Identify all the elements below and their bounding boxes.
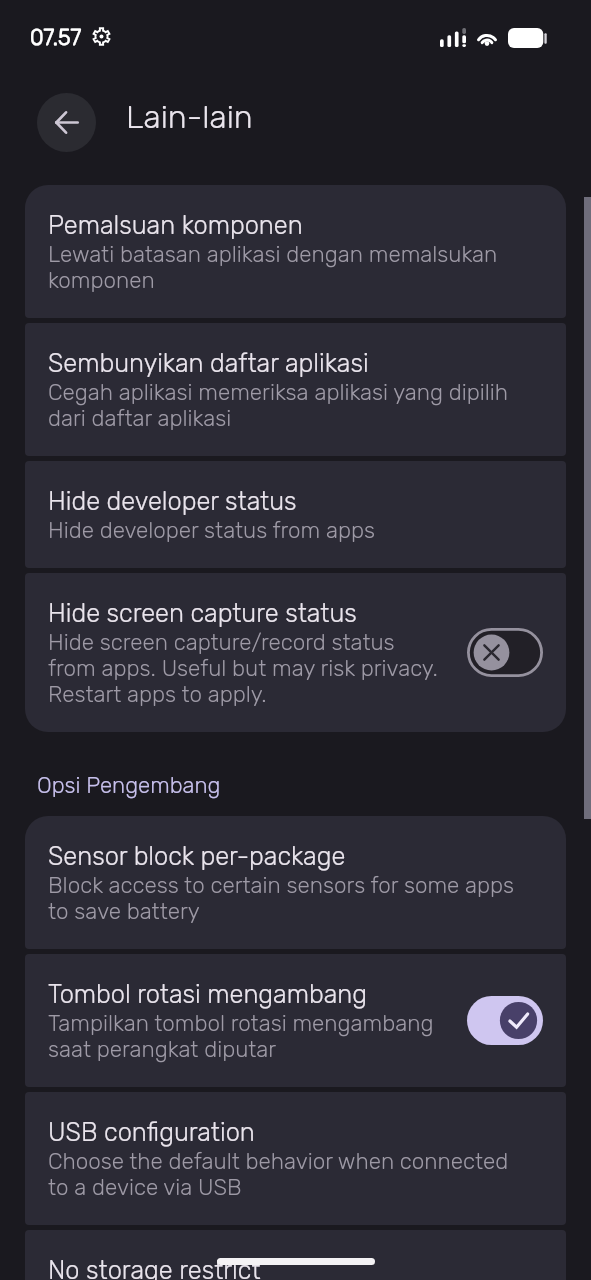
- staticText: Opsi Pengembang: [37, 772, 221, 798]
- staticText: Sembunyikan daftar aplikasi: [48, 348, 369, 379]
- staticText: Lain-lain: [126, 98, 253, 136]
- button[interactable]: Hide developer status: [25, 461, 566, 568]
- button[interactable]: Switch on: [467, 996, 543, 1045]
- button[interactable]: Switch off: [467, 628, 543, 677]
- staticText: Lewati batasan aplikasi dengan memalsuka…: [48, 241, 527, 293]
- button[interactable]: Hide screen capture status: [25, 573, 566, 732]
- button[interactable]: Sensor block per-package: [25, 816, 566, 949]
- button[interactable]: Pemalsuan komponen: [25, 185, 566, 318]
- staticText: Tombol rotasi mengambang: [48, 979, 368, 1010]
- staticText: No storage restrict: [48, 1255, 261, 1280]
- button[interactable]: Back: [37, 93, 96, 152]
- staticText: Hide developer status from apps: [48, 517, 376, 543]
- staticText: Hide developer status: [48, 486, 297, 517]
- staticText: Cegah aplikasi memeriksa aplikasi yang d…: [48, 379, 527, 431]
- staticText: Pemalsuan komponen: [48, 210, 303, 241]
- staticText: Choose the default behavior when connect…: [48, 1148, 527, 1200]
- staticText: Block access to certain sensors for some…: [48, 872, 527, 924]
- staticText: Hide screen capture/record status from a…: [48, 629, 446, 707]
- staticText: Sensor block per-package: [48, 841, 346, 872]
- button[interactable]: Tombol rotasi mengambang: [25, 954, 566, 1087]
- staticText: 07.57: [30, 24, 82, 50]
- button[interactable]: Sembunyikan daftar aplikasi: [25, 323, 566, 456]
- button[interactable]: USB configuration: [25, 1092, 566, 1225]
- staticText: USB configuration: [48, 1117, 255, 1148]
- button[interactable]: No storage restrict: [25, 1230, 566, 1280]
- staticText: Tampilkan tombol rotasi mengambang saat …: [48, 1010, 446, 1062]
- staticText: Hide screen capture status: [48, 598, 357, 629]
